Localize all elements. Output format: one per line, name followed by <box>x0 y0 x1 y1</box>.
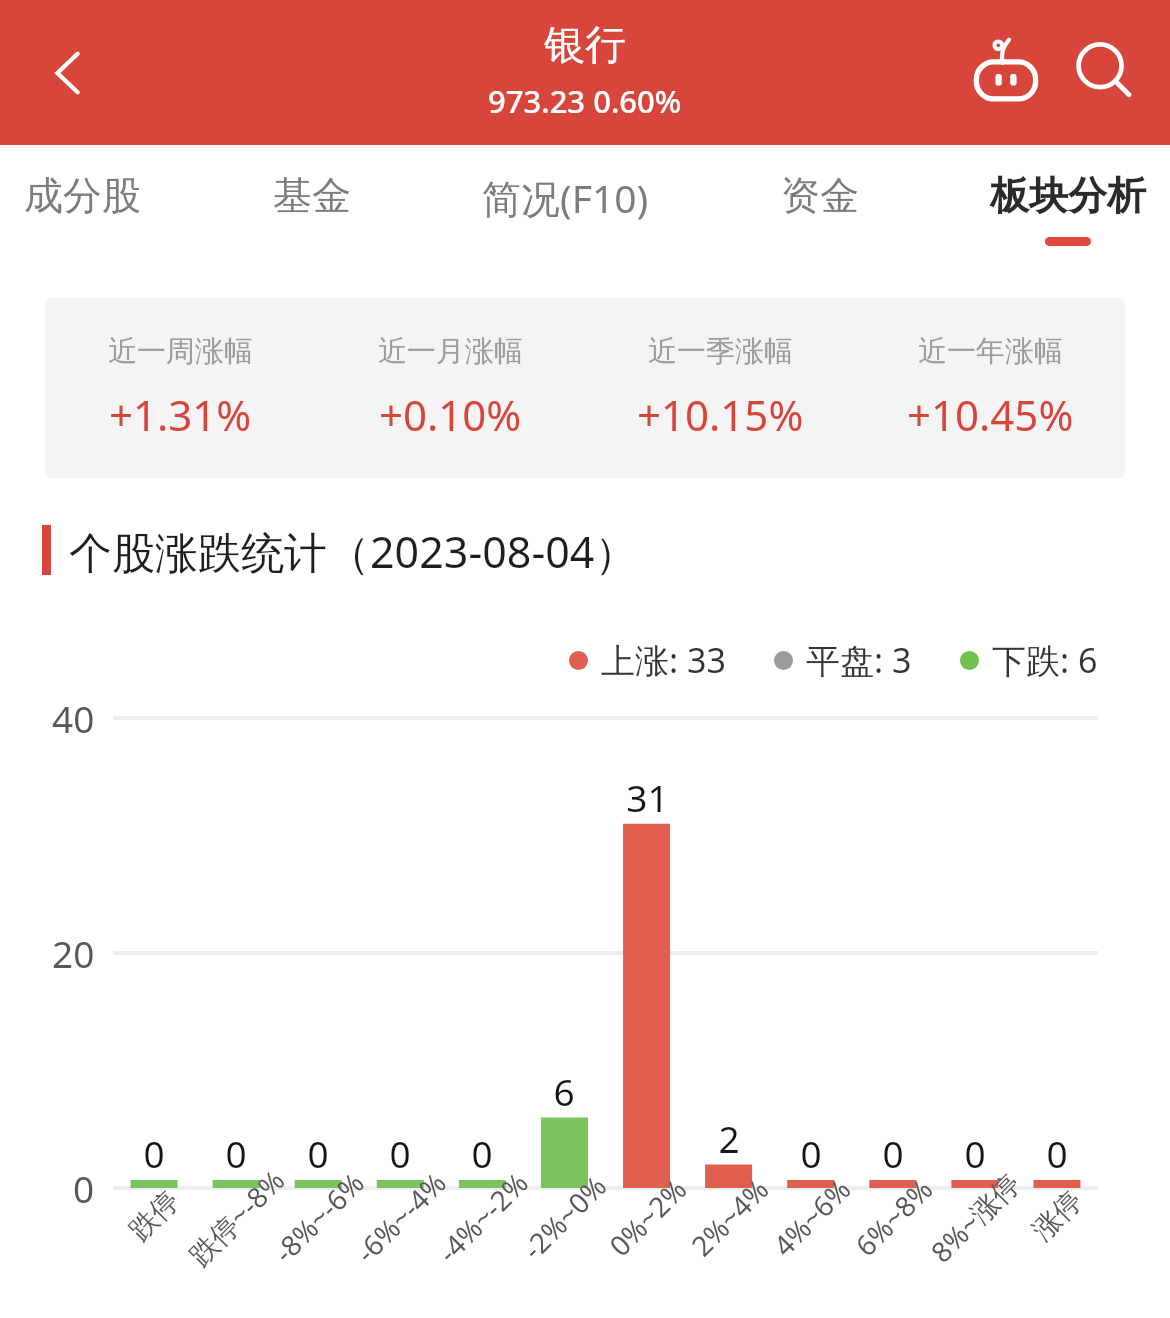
staticText: 973.23 0.60% <box>488 80 682 122</box>
staticText: 近一年涨幅 <box>918 333 1063 370</box>
staticText: 基金 <box>273 171 351 220</box>
button[interactable]: 成分股 <box>24 145 141 252</box>
button[interactable]: 资金 <box>781 145 859 252</box>
staticText: 个股涨跌统计（2023-08-04） <box>69 522 638 578</box>
button[interactable]: Search <box>1056 23 1156 123</box>
staticText: 2 <box>718 1113 740 1163</box>
staticText: 0 <box>1046 1128 1068 1178</box>
staticText: 4%~6% <box>764 1170 858 1264</box>
staticText: 下跌: 6 <box>992 637 1098 683</box>
staticText: 成分股 <box>24 171 141 220</box>
staticText: 0 <box>225 1128 247 1178</box>
staticText: 近一月涨幅 <box>378 333 523 370</box>
staticText: 跌停 <box>122 1183 186 1248</box>
button[interactable]: 基金 <box>273 145 351 252</box>
staticText: 2%~4% <box>682 1170 776 1264</box>
staticText: -4%~-2% <box>429 1164 536 1270</box>
staticText: 0 <box>389 1128 411 1178</box>
staticText: +10.15% <box>637 386 804 443</box>
staticText: 0%~2% <box>600 1170 694 1264</box>
staticText: 涨停 <box>1025 1183 1089 1248</box>
staticText: 上涨: 33 <box>601 637 726 683</box>
staticText: 近一周涨幅 <box>108 333 253 370</box>
staticText: 0 <box>964 1128 986 1178</box>
button[interactable]: AI assistant <box>956 23 1056 123</box>
staticText: 0 <box>800 1128 822 1178</box>
staticText: 6 <box>553 1066 575 1116</box>
staticText: 跌停~-8% <box>180 1161 293 1273</box>
staticText: 0 <box>471 1128 493 1178</box>
staticText: 资金 <box>781 171 859 220</box>
button[interactable]: 简况(F10) <box>482 145 649 256</box>
staticText: +0.10% <box>379 386 522 443</box>
staticText: 简况(F10) <box>482 171 649 224</box>
staticText: +1.31% <box>109 386 252 443</box>
staticText: 0 <box>882 1128 904 1178</box>
staticText: 板块分析 <box>990 171 1146 220</box>
staticText: -6%~-4% <box>347 1164 454 1270</box>
staticText: 0 <box>143 1128 165 1178</box>
staticText: 0 <box>307 1128 329 1178</box>
staticText: 近一季涨幅 <box>648 333 793 370</box>
staticText: 8%~涨停 <box>922 1164 1028 1270</box>
staticText: 平盘: 3 <box>806 637 912 683</box>
staticText: -2%~0% <box>514 1167 614 1267</box>
staticText: 31 <box>626 772 669 822</box>
staticText: 20 <box>52 928 95 978</box>
staticText: 银行 <box>544 20 626 72</box>
staticText: +10.45% <box>907 386 1074 443</box>
staticText: 0 <box>73 1163 95 1213</box>
button[interactable]: Back <box>18 23 118 123</box>
staticText: 40 <box>52 693 95 743</box>
button[interactable]: 板块分析 <box>990 145 1146 252</box>
staticText: 6%~8% <box>846 1170 940 1264</box>
staticText: -8%~-6% <box>265 1164 372 1270</box>
